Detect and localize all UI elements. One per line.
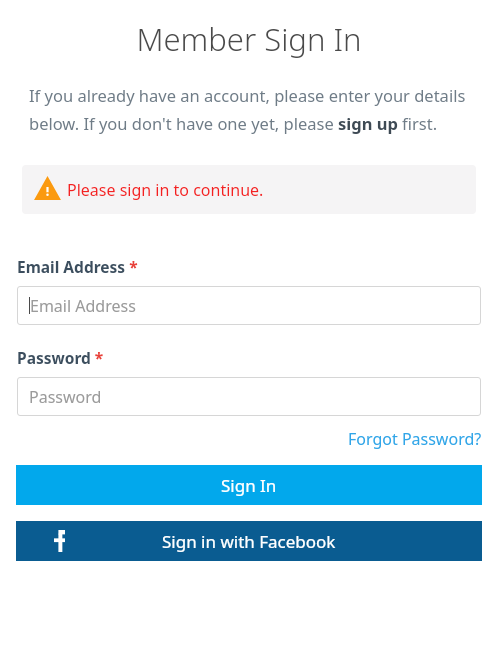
staticText: Member Sign In — [0, 18, 498, 60]
staticText: Sign In — [221, 474, 277, 497]
button[interactable]: Sign in with Facebook — [16, 521, 482, 561]
staticText: If you already have an account, please e… — [29, 84, 474, 135]
staticText: Password * — [17, 347, 104, 368]
staticText: Password — [29, 386, 102, 408]
button[interactable]: Email Address — [17, 286, 481, 325]
button[interactable]: Sign In — [16, 465, 482, 505]
button[interactable]: Forgot Password? — [348, 426, 482, 452]
button[interactable]: Please sign in to continue. — [22, 165, 476, 214]
staticText: Email Address * — [17, 256, 138, 277]
button[interactable]: Password — [17, 377, 481, 416]
staticText: Email Address — [30, 295, 136, 317]
staticText: Please sign in to continue. — [67, 179, 264, 201]
staticText: Sign in with Facebook — [162, 530, 336, 553]
